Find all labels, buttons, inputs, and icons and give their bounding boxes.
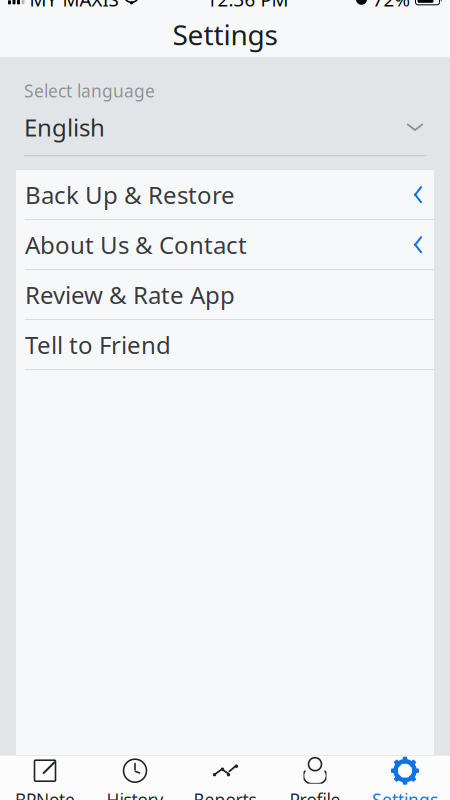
staticText: Tell to Friend <box>25 329 171 361</box>
staticText: Settings <box>372 788 438 800</box>
staticText: Back Up & Restore <box>25 179 235 211</box>
button[interactable]: Reports <box>180 756 270 800</box>
staticText: 72% <box>372 0 410 12</box>
staticText: English <box>24 111 105 143</box>
button[interactable]: Select language <box>0 57 450 156</box>
staticText: About Us & Contact <box>25 229 247 261</box>
button[interactable]: History <box>90 756 180 800</box>
button[interactable]: About Us & Contact <box>16 220 434 269</box>
button[interactable]: Tell to Friend <box>16 320 434 369</box>
staticText: Select language <box>24 79 155 102</box>
button[interactable]: Settings <box>360 756 450 800</box>
staticText: Review & Rate App <box>25 279 235 311</box>
staticText: BPNote <box>15 788 75 800</box>
staticText: MY MAXIS <box>29 0 118 12</box>
staticText: Profile <box>289 788 340 800</box>
staticText: Reports <box>193 788 256 800</box>
button[interactable]: BPNote <box>0 756 90 800</box>
button[interactable]: Review & Rate App <box>16 270 434 319</box>
staticText: 12:36 PM <box>206 0 288 12</box>
button[interactable]: Back Up & Restore <box>16 170 434 219</box>
staticText: Settings <box>172 16 277 53</box>
button[interactable]: Profile <box>270 756 360 800</box>
staticText: History <box>106 788 163 800</box>
